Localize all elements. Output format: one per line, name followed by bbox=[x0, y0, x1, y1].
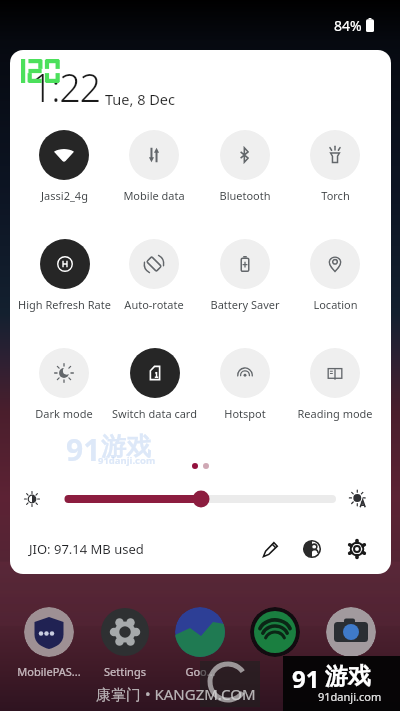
button[interactable]: Battery Saver bbox=[191, 239, 299, 319]
staticText: High Refresh Rate bbox=[18, 297, 111, 312]
staticText: 84% bbox=[334, 16, 362, 35]
button[interactable]: JIO: 97.14 MB used bbox=[29, 536, 258, 562]
button[interactable]: App 1 bbox=[100, 607, 150, 657]
staticText: 91danji.com bbox=[98, 454, 156, 467]
button[interactable]: Hotspot bbox=[191, 348, 299, 428]
button[interactable]: Switch data card bbox=[100, 348, 208, 428]
staticText: 91 bbox=[292, 662, 320, 695]
staticText: 游戏 bbox=[101, 431, 151, 462]
staticText: 91danji.com bbox=[318, 689, 382, 704]
staticText: Goo... bbox=[185, 664, 216, 679]
staticText: MobilePAS... bbox=[17, 664, 81, 679]
staticText: Tue, 8 Dec bbox=[105, 89, 175, 109]
staticText: Bluetooth bbox=[219, 188, 271, 203]
staticText: Switch data card bbox=[112, 406, 197, 421]
staticText: Jassi2_4g bbox=[41, 188, 88, 203]
staticText: Auto-rotate bbox=[124, 297, 184, 312]
button[interactable]: App 3 bbox=[250, 607, 300, 657]
button[interactable]: High Refresh Rate bbox=[10, 239, 118, 319]
button[interactable]: Power bbox=[299, 536, 325, 562]
button[interactable]: App 4 bbox=[326, 607, 376, 657]
staticText: Reading mode bbox=[297, 406, 373, 421]
button[interactable]: Torch bbox=[281, 130, 389, 210]
staticText: Settings bbox=[104, 664, 146, 679]
staticText: 1:22 bbox=[31, 61, 100, 113]
button[interactable]: App 2 bbox=[175, 607, 225, 657]
button[interactable]: Mobile data bbox=[100, 130, 208, 210]
button[interactable]: Location bbox=[281, 239, 389, 319]
staticText: Dark mode bbox=[35, 406, 93, 421]
button[interactable]: Jassi2_4g bbox=[10, 130, 118, 210]
staticText: Hotspot bbox=[224, 406, 266, 421]
staticText: 游戏 bbox=[325, 662, 371, 691]
button[interactable]: Reading mode bbox=[281, 348, 389, 428]
button[interactable]: Settings bbox=[344, 536, 370, 562]
button[interactable]: Auto-rotate bbox=[100, 239, 208, 319]
button[interactable]: App 0 bbox=[24, 607, 74, 657]
button[interactable]: Dark mode bbox=[10, 348, 118, 428]
staticText: 康掌门 • KANGZM.COM bbox=[96, 684, 256, 704]
staticText: Battery Saver bbox=[210, 297, 280, 312]
button[interactable]: Bluetooth bbox=[191, 130, 299, 210]
staticText: Mobile data bbox=[123, 188, 185, 203]
staticText: JIO: 97.14 MB used bbox=[29, 540, 144, 558]
staticText: 91 bbox=[66, 429, 101, 470]
staticText: Torch bbox=[321, 188, 350, 203]
button[interactable]: Edit bbox=[258, 536, 284, 562]
staticText: Location bbox=[313, 297, 358, 312]
